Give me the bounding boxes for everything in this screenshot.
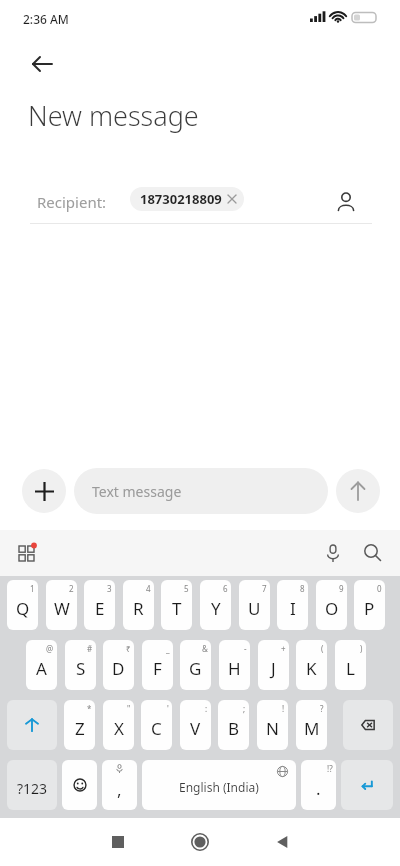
button[interactable]: Back (20, 42, 64, 86)
staticText: ? (320, 703, 324, 714)
staticText: F (153, 657, 162, 680)
button[interactable]: 4 (123, 580, 154, 630)
button[interactable]: 3 (84, 580, 115, 630)
button[interactable]: ?123 (7, 760, 57, 810)
staticText: @ (46, 643, 54, 654)
staticText: 0 (377, 583, 382, 594)
button[interactable]: & (180, 640, 211, 690)
button[interactable]: - (219, 640, 250, 690)
staticText: P (364, 597, 375, 620)
button[interactable]: Emoji (62, 760, 97, 810)
staticText: 6 (223, 583, 228, 594)
staticText: Z (75, 717, 85, 740)
staticText: X (114, 717, 124, 740)
staticText: D (112, 657, 125, 680)
button[interactable]: Send (336, 469, 380, 513)
staticText: Recipient: (37, 192, 107, 212)
staticText: # (87, 643, 93, 654)
button[interactable]: ! (257, 700, 288, 750)
staticText: 4 (146, 583, 151, 594)
button[interactable]: " (103, 700, 134, 750)
staticText: H (228, 657, 241, 680)
staticText: B (228, 717, 240, 740)
staticText: New message (28, 97, 199, 134)
button[interactable]: ' (141, 700, 172, 750)
staticText: Q (16, 597, 30, 620)
staticText: A (36, 657, 47, 680)
button[interactable]: 7 (239, 580, 270, 630)
button[interactable]: Attach (22, 469, 66, 513)
button[interactable]: Text message (74, 468, 328, 514)
staticText: 1 (30, 583, 35, 594)
staticText: M (304, 717, 320, 740)
button[interactable]: 8 (277, 580, 308, 630)
staticText: 7 (262, 583, 267, 594)
button[interactable]: Voice input (313, 533, 353, 573)
staticText: 9 (339, 583, 344, 594)
staticText: ; (243, 703, 246, 714)
staticText: 18730218809 (140, 190, 222, 208)
staticText: ₹ (126, 643, 131, 654)
button[interactable]: + (258, 640, 289, 690)
button[interactable]: Search (353, 533, 393, 573)
staticText: K (306, 657, 317, 680)
staticText: ( (321, 643, 324, 654)
button[interactable]: 6 (200, 580, 231, 630)
button[interactable]: ? (296, 700, 327, 750)
staticText: U (248, 597, 261, 620)
staticText: 2:36 AM (23, 11, 69, 27)
button[interactable]: Home (176, 818, 224, 866)
staticText: _ (166, 643, 170, 654)
button[interactable]: * (64, 700, 95, 750)
staticText: Y (211, 597, 221, 620)
staticText: Text message (92, 482, 182, 501)
button[interactable]: 2 (46, 580, 77, 630)
staticText: R (133, 597, 144, 620)
staticText: C (151, 717, 162, 740)
button[interactable]: Recents (94, 818, 142, 866)
staticText: : (205, 703, 208, 714)
button[interactable]: 18730218809 (130, 187, 244, 211)
staticText: , (117, 778, 122, 801)
staticText: - (244, 643, 247, 654)
staticText: English (India) (179, 779, 259, 795)
button[interactable]: Enter (341, 760, 393, 810)
staticText: 3 (107, 583, 112, 594)
button[interactable]: Comma and voice (102, 760, 137, 810)
staticText: ?123 (17, 779, 48, 798)
staticText: V (190, 717, 201, 740)
staticText: S (76, 657, 86, 680)
button[interactable]: 9 (316, 580, 347, 630)
staticText: . (316, 777, 321, 800)
button[interactable]: Toolbar (8, 533, 48, 573)
staticText: W (54, 597, 70, 620)
button[interactable]: # (65, 640, 96, 690)
button[interactable]: ₹ (103, 640, 134, 690)
button[interactable]: _ (142, 640, 173, 690)
button[interactable]: 0 (354, 580, 385, 630)
button[interactable]: ( (296, 640, 327, 690)
button[interactable]: ; (218, 700, 249, 750)
staticText: 2 (69, 583, 74, 594)
staticText: & (202, 643, 208, 654)
staticText: ) (360, 643, 363, 654)
staticText: O (325, 597, 339, 620)
staticText: " (127, 703, 131, 714)
staticText: G (189, 657, 202, 680)
button[interactable]: Back (258, 818, 306, 866)
button[interactable]: !? (301, 760, 336, 810)
staticText: J (271, 657, 276, 680)
staticText: N (266, 717, 279, 740)
button[interactable]: @ (26, 640, 57, 690)
button[interactable]: 5 (161, 580, 192, 630)
button[interactable]: Shift (7, 700, 57, 750)
button[interactable]: 1 (7, 580, 38, 630)
button[interactable]: ) (335, 640, 366, 690)
staticText: L (346, 657, 355, 680)
button[interactable]: English (India) (142, 760, 296, 810)
button[interactable]: Backspace (343, 700, 393, 750)
staticText: 5 (184, 583, 189, 594)
button[interactable]: Add contact (324, 180, 368, 224)
staticText: ! (282, 703, 285, 714)
button[interactable]: : (180, 700, 211, 750)
